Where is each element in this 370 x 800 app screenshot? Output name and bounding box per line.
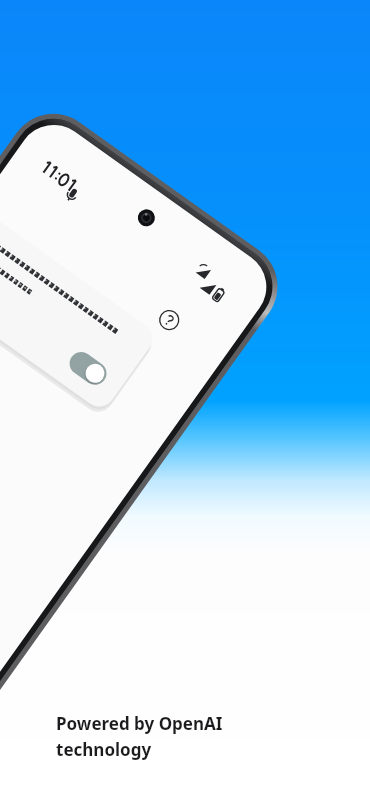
staticText: Powered by OpenAI	[56, 712, 223, 735]
button[interactable]: Powered by OpenAI	[56, 712, 231, 758]
staticText: technology	[56, 738, 152, 761]
